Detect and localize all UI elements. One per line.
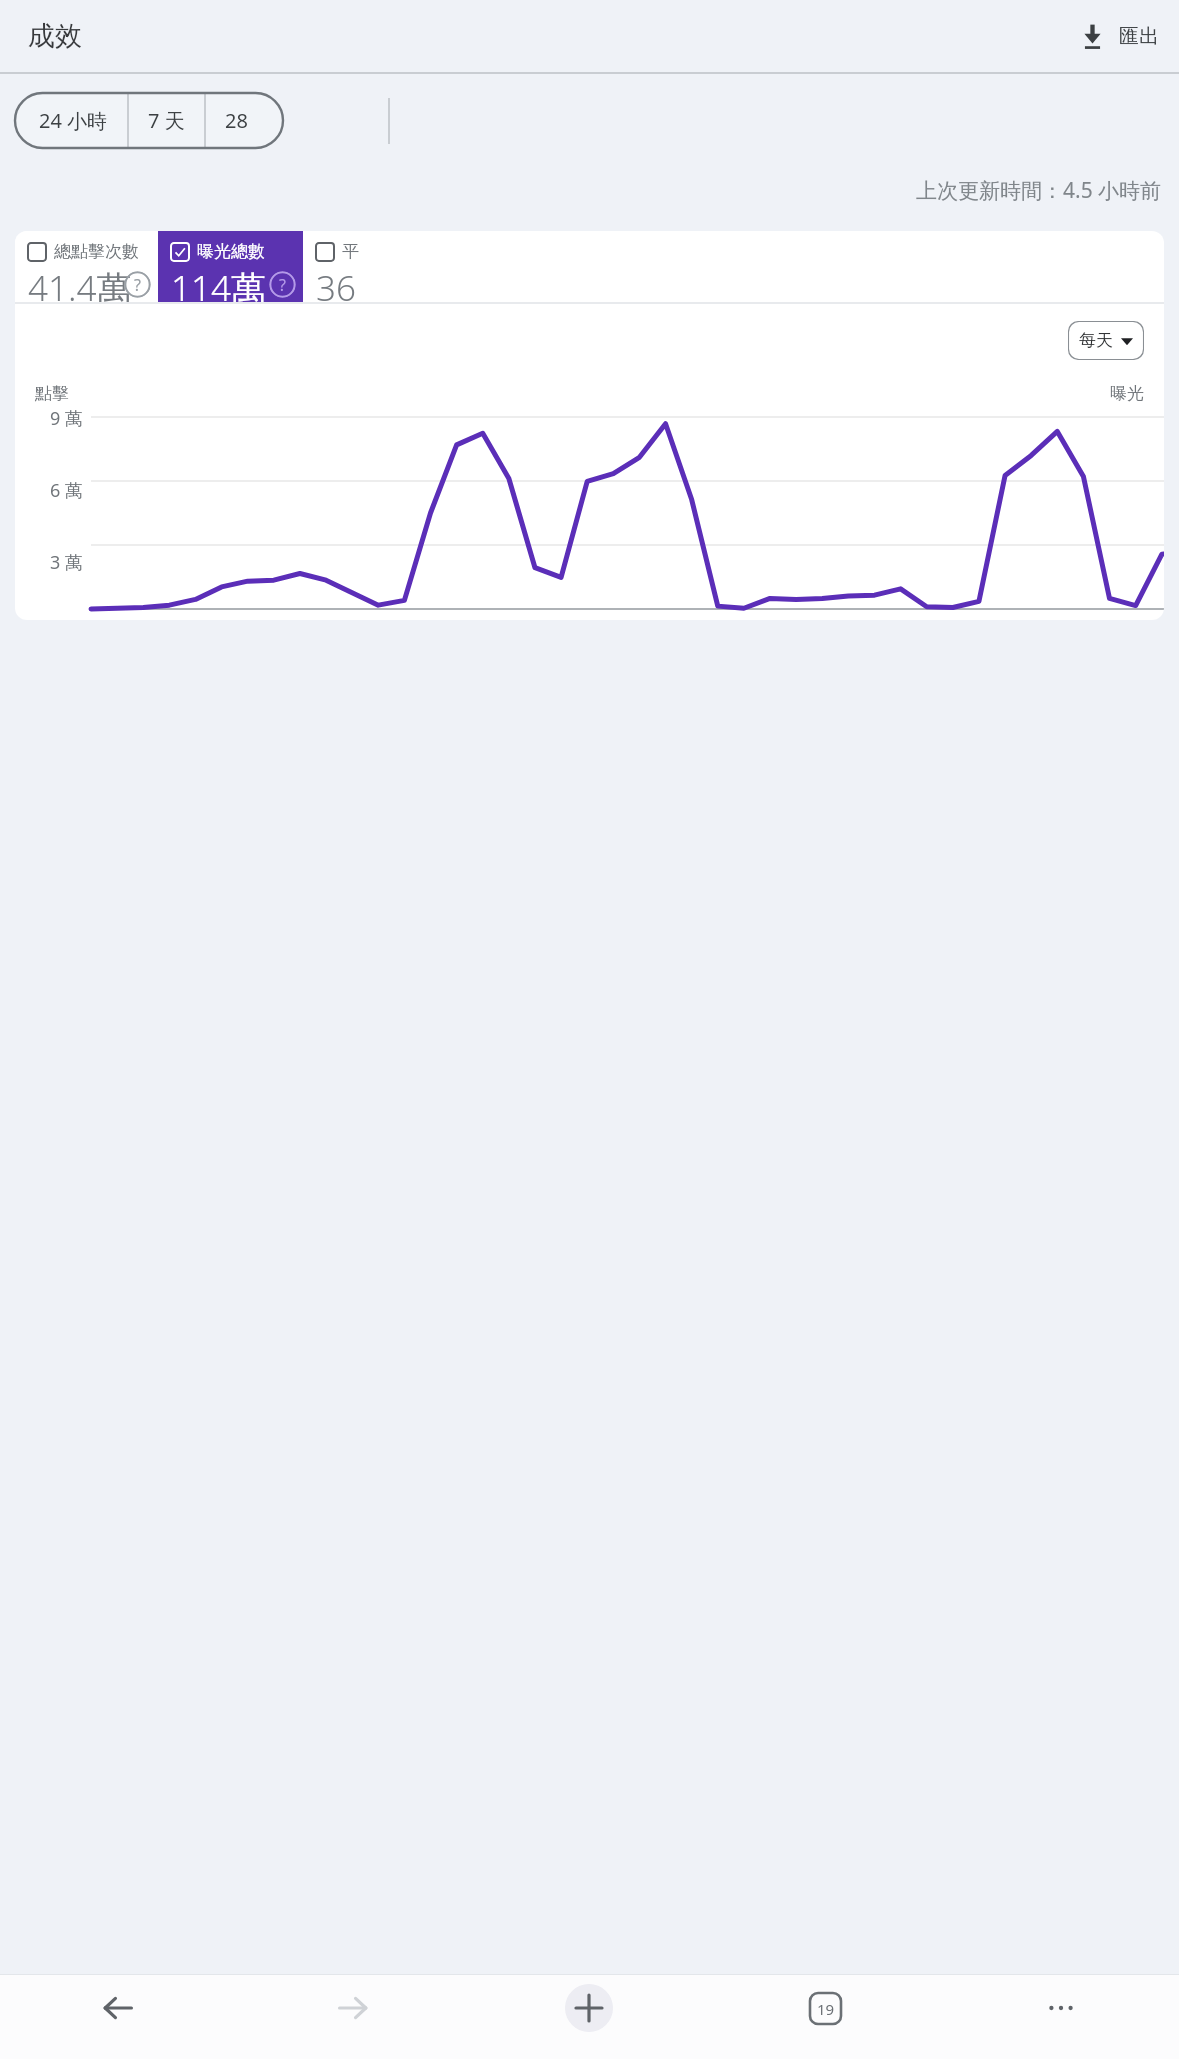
button[interactable]: 說明 bbox=[269, 271, 296, 298]
button[interactable]: 總點擊次數 bbox=[15, 231, 158, 302]
staticText: 28 天 bbox=[225, 107, 264, 134]
button[interactable]: 返回 bbox=[0, 1975, 235, 2041]
staticText: 7 天 bbox=[148, 107, 185, 134]
staticText: 6 萬 bbox=[50, 478, 83, 500]
staticText: ? bbox=[134, 274, 141, 296]
button[interactable]: 前進 bbox=[235, 1975, 471, 2041]
button[interactable]: 每天 bbox=[1068, 321, 1144, 360]
button[interactable]: 曝光總數 bbox=[158, 231, 303, 302]
staticText: 點擊 bbox=[35, 383, 69, 404]
staticText: 成效 bbox=[28, 19, 82, 53]
staticText: 匯出 bbox=[1119, 24, 1159, 49]
button[interactable]: 說明 bbox=[124, 271, 151, 298]
button[interactable]: 平 bbox=[303, 231, 403, 302]
staticText: 上次更新時間：4.5 小時前 bbox=[916, 176, 1162, 205]
staticText: 41.4萬 bbox=[28, 264, 132, 302]
staticText: 總點擊次數 bbox=[54, 241, 139, 262]
button[interactable]: 更多選項 bbox=[943, 1975, 1179, 2041]
staticText: 24 小時 bbox=[39, 107, 108, 134]
staticText: 114萬 bbox=[171, 264, 266, 302]
staticText: 19 bbox=[817, 1999, 835, 2019]
staticText: 9 萬 bbox=[50, 406, 83, 428]
button[interactable]: 新增分頁 bbox=[471, 1975, 707, 2041]
staticText: 3 萬 bbox=[50, 550, 83, 572]
button[interactable]: 分頁 bbox=[707, 1975, 943, 2041]
staticText: 每天 bbox=[1079, 330, 1113, 351]
staticText: 曝光總數 bbox=[197, 241, 265, 262]
button[interactable]: 7 天 bbox=[129, 93, 204, 148]
button[interactable]: 28 天 bbox=[206, 93, 283, 148]
staticText: 曝光 bbox=[1110, 383, 1144, 404]
staticText: 36 bbox=[316, 264, 356, 302]
button[interactable]: 24 小時 bbox=[15, 93, 127, 148]
staticText: 平 bbox=[342, 241, 359, 262]
staticText: ? bbox=[279, 274, 286, 296]
button[interactable]: 匯出 bbox=[1073, 15, 1165, 58]
